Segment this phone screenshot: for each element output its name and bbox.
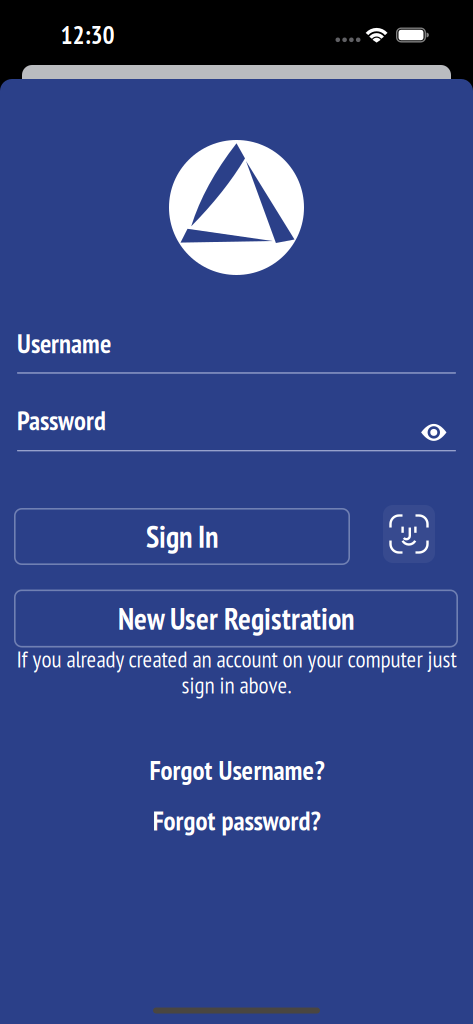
button[interactable]: Forgot Username? (149, 753, 324, 787)
button[interactable]: Sign In (14, 508, 350, 565)
button[interactable]: Sign in with Face ID (383, 505, 435, 563)
staticText: Forgot Username? (149, 753, 324, 787)
staticText: If you already created an account on you… (16, 644, 456, 674)
staticText: 12:30 (60, 18, 114, 51)
button[interactable]: Password (17, 403, 456, 451)
staticText: Username (17, 326, 111, 360)
staticText: Forgot password? (152, 803, 320, 838)
staticText: sign in above. (181, 670, 291, 700)
button[interactable]: New User Registration (14, 589, 458, 647)
button[interactable]: Forgot password? (152, 803, 320, 838)
button[interactable]: Show password (420, 422, 447, 442)
button[interactable]: Username (17, 326, 456, 374)
staticText: New User Registration (118, 599, 354, 638)
staticText: Password (17, 403, 106, 438)
staticText: Sign In (146, 517, 218, 556)
